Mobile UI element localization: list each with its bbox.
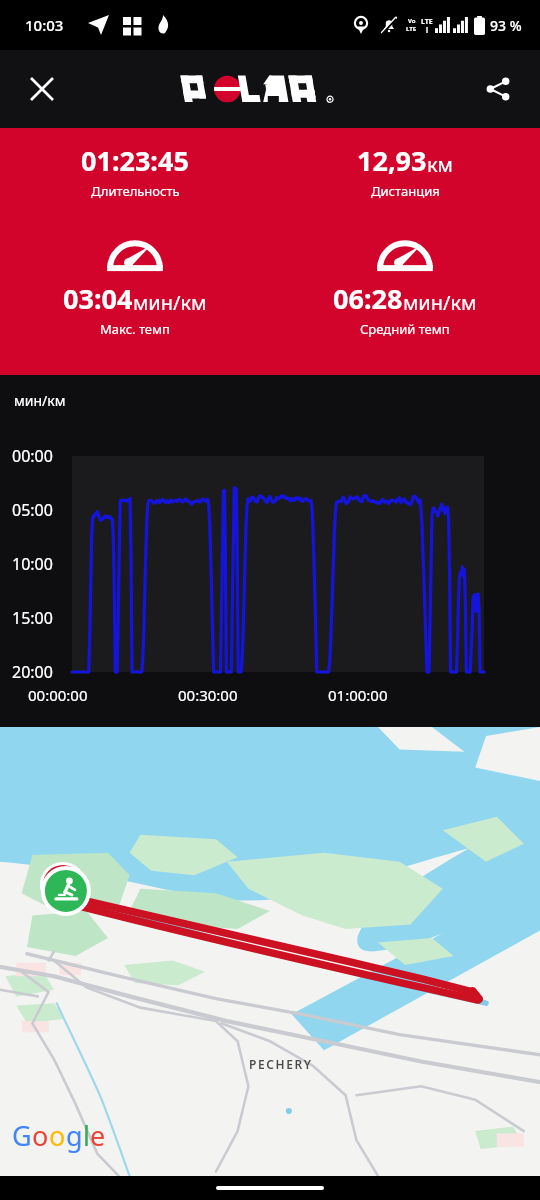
staticText: LTE: [406, 25, 417, 33]
staticText: Макс. темп: [100, 320, 170, 338]
staticText: мин/км: [14, 391, 66, 410]
staticText: 05:00: [12, 499, 53, 521]
staticText: 93 %: [490, 16, 522, 35]
staticText: Дистанция: [371, 182, 440, 200]
staticText: o: [49, 1117, 66, 1154]
button[interactable]: 01:23:45: [0, 142, 270, 200]
button[interactable]: Share: [474, 65, 522, 113]
staticText: g: [66, 1117, 83, 1154]
staticText: мин/км: [133, 289, 207, 316]
staticText: LTE: [421, 17, 433, 27]
staticText: 00:30:00: [178, 685, 238, 705]
button[interactable]: 06:28: [270, 235, 540, 338]
staticText: o: [32, 1117, 49, 1154]
staticText: Длительность: [91, 182, 180, 200]
button[interactable]: PECHERY: [0, 727, 540, 1176]
staticText: G: [12, 1117, 32, 1154]
staticText: l: [83, 1117, 90, 1154]
staticText: 10:03: [25, 15, 64, 35]
staticText: e: [90, 1117, 106, 1154]
staticText: 06:28: [333, 280, 403, 317]
staticText: 15:00: [12, 607, 53, 629]
staticText: 00:00: [12, 445, 53, 467]
staticText: мин/км: [403, 289, 477, 316]
staticText: 10:00: [12, 553, 53, 575]
staticText: Средний темп: [360, 320, 450, 338]
staticText: 20:00: [12, 661, 53, 683]
staticText: 01:23:45: [81, 142, 189, 179]
staticText: км: [427, 151, 453, 178]
staticText: 03:04: [63, 280, 133, 317]
button[interactable]: Close: [18, 65, 66, 113]
staticText: PECHERY: [249, 1056, 313, 1072]
staticText: Vo: [408, 17, 416, 25]
button[interactable]: 03:04: [0, 235, 270, 338]
staticText: 01:00:00: [328, 685, 388, 705]
staticText: 00:00:00: [28, 685, 88, 705]
button[interactable]: 12,93: [270, 142, 540, 200]
staticText: 12,93: [357, 142, 427, 179]
